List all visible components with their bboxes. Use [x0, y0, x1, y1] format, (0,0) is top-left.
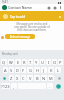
- button[interactable]: .: [47, 83, 53, 89]
- staticText: ?123: [1, 84, 10, 89]
- staticText: H: [36, 68, 39, 73]
- button[interactable]: T: [28, 59, 33, 65]
- button[interactable]: O: [52, 59, 57, 65]
- staticText: W: [9, 60, 13, 65]
- button[interactable]: Tap to add: [0, 11, 64, 21]
- staticText: F: [22, 68, 25, 73]
- staticText: Monday said: [2, 52, 18, 56]
- button[interactable]: S: [9, 67, 14, 73]
- staticText: M: [49, 76, 53, 81]
- button[interactable]: Z: [9, 75, 14, 81]
- staticText: O: [53, 60, 57, 65]
- button[interactable]: Send: [54, 83, 63, 89]
- staticText: A short message: [10, 35, 31, 39]
- button[interactable]: More options: [59, 6, 62, 9]
- button[interactable]: A short message: [5, 34, 35, 39]
- staticText: C: [22, 76, 25, 81]
- button[interactable]: F: [21, 67, 26, 73]
- staticText: U: [41, 60, 44, 65]
- staticText: R: [23, 60, 26, 65]
- staticText: V: [29, 76, 32, 81]
- button[interactable]: G: [27, 67, 33, 73]
- staticText: G: [29, 68, 32, 73]
- button[interactable]: L: [55, 67, 61, 73]
- staticText: Tap to add: [10, 15, 26, 19]
- staticText: Y: [35, 60, 38, 65]
- staticText: K: [50, 68, 53, 73]
- button[interactable]: V: [27, 75, 33, 81]
- button[interactable]: A: [3, 67, 8, 73]
- button[interactable]: I: [46, 59, 51, 65]
- staticText: P: [59, 60, 62, 65]
- button[interactable]: Video call: [47, 6, 51, 10]
- staticText: J: [43, 68, 45, 73]
- staticText: Q: [2, 60, 6, 65]
- staticText: .: [49, 84, 51, 89]
- button[interactable]: Y: [34, 59, 39, 65]
- button[interactable]: J: [41, 67, 47, 73]
- button[interactable]: X: [15, 75, 20, 81]
- staticText: A: [4, 68, 7, 73]
- button[interactable]: ,: [11, 83, 17, 89]
- button[interactable]: K: [48, 67, 54, 73]
- button[interactable]: M: [48, 75, 54, 81]
- staticText: L: [57, 68, 60, 73]
- staticText: Contact Name: [8, 5, 32, 10]
- staticText: 9:41: [2, 0, 8, 4]
- button[interactable]: W: [8, 59, 14, 65]
- button[interactable]: N: [41, 75, 47, 81]
- staticText: E: [17, 60, 20, 65]
- staticText: I: [48, 60, 50, 65]
- button[interactable]: R: [22, 59, 27, 65]
- staticText: ,: [13, 84, 15, 89]
- staticText: Z: [10, 76, 13, 81]
- staticText: D: [16, 68, 19, 73]
- button[interactable]: ?123: [1, 83, 10, 89]
- button[interactable]: D: [15, 67, 20, 73]
- staticText: X: [16, 76, 19, 81]
- staticText: B: [36, 76, 39, 81]
- staticText: S: [10, 68, 13, 73]
- button[interactable]: U: [40, 59, 45, 65]
- button[interactable]: B: [34, 75, 40, 81]
- button[interactable]: Q: [1, 59, 7, 65]
- staticText: N: [42, 76, 46, 81]
- staticText: ▮▮: [58, 1, 62, 4]
- staticText: Messages are end-to-end encrypted. No on…: [14, 22, 50, 31]
- button[interactable]: C: [21, 75, 26, 81]
- staticText: T: [29, 60, 32, 65]
- button[interactable]: H: [34, 67, 40, 73]
- button[interactable]: Voice call: [53, 6, 57, 10]
- button[interactable]: E: [15, 59, 21, 65]
- button[interactable]: Backspace: [55, 75, 63, 81]
- button[interactable]: Shift: [1, 75, 8, 81]
- button[interactable]: P: [58, 59, 63, 65]
